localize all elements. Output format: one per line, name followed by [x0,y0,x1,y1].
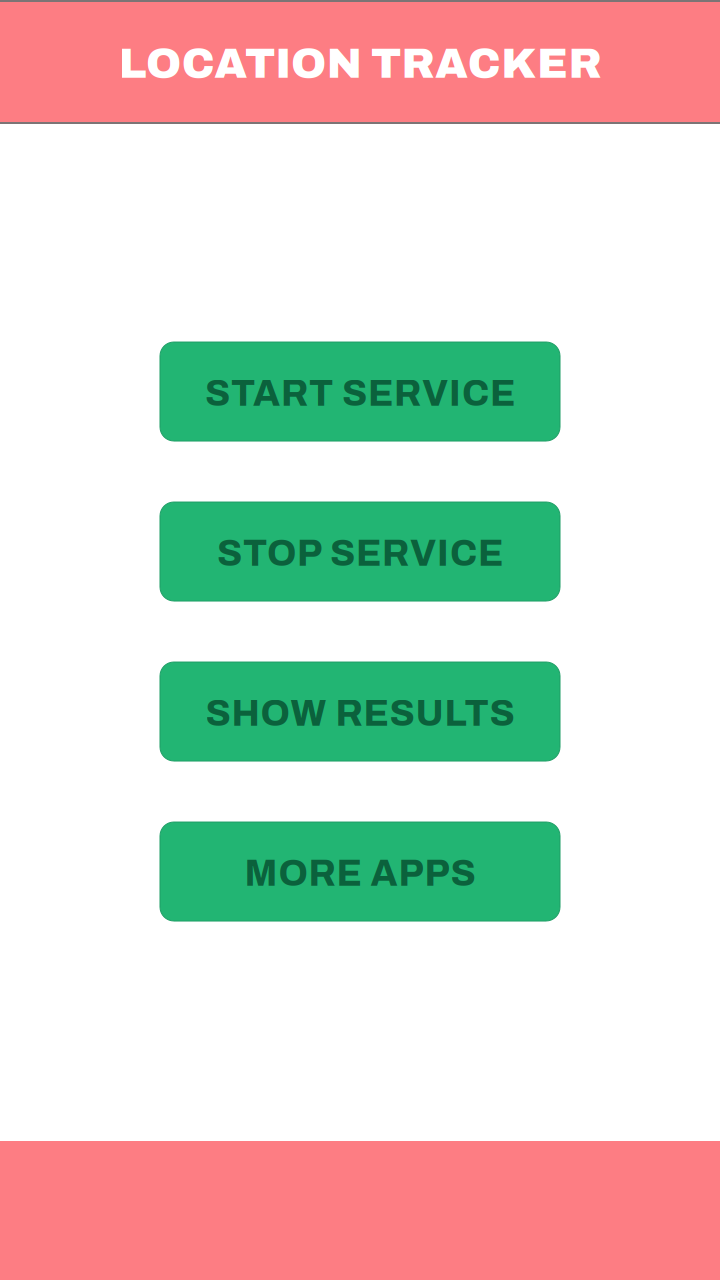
button[interactable]: MORE APPS [160,822,560,921]
staticText: STOP SERVICE [217,534,503,573]
staticText: SHOW RESULTS [205,694,514,733]
button[interactable]: STOP SERVICE [160,502,560,601]
staticText: START SERVICE [205,374,515,413]
staticText: LOCATION TRACKER [118,40,601,87]
button[interactable]: SHOW RESULTS [160,662,560,761]
button[interactable]: START SERVICE [160,342,560,441]
staticText: MORE APPS [244,854,475,893]
